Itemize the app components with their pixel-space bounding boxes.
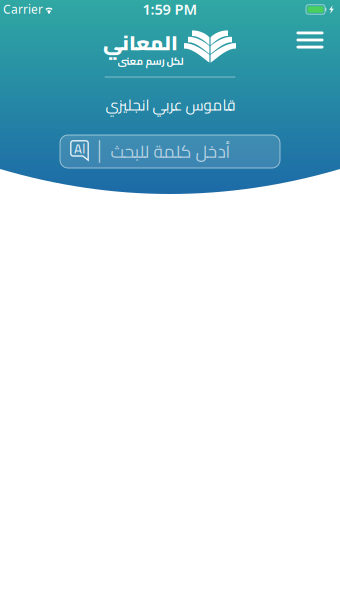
staticText: أدخل كلمة للبحث xyxy=(110,135,230,168)
button[interactable]: Menu xyxy=(288,18,332,62)
staticText: 1:59 PM xyxy=(142,0,197,19)
staticText: المعاني xyxy=(102,24,177,62)
staticText: Aا xyxy=(74,136,86,161)
button[interactable]: Search field xyxy=(60,135,280,168)
staticText: Carrier xyxy=(3,1,43,17)
staticText: لكل رسم معنى xyxy=(117,52,183,70)
staticText: قاموس عربي انجليزي xyxy=(105,91,235,119)
